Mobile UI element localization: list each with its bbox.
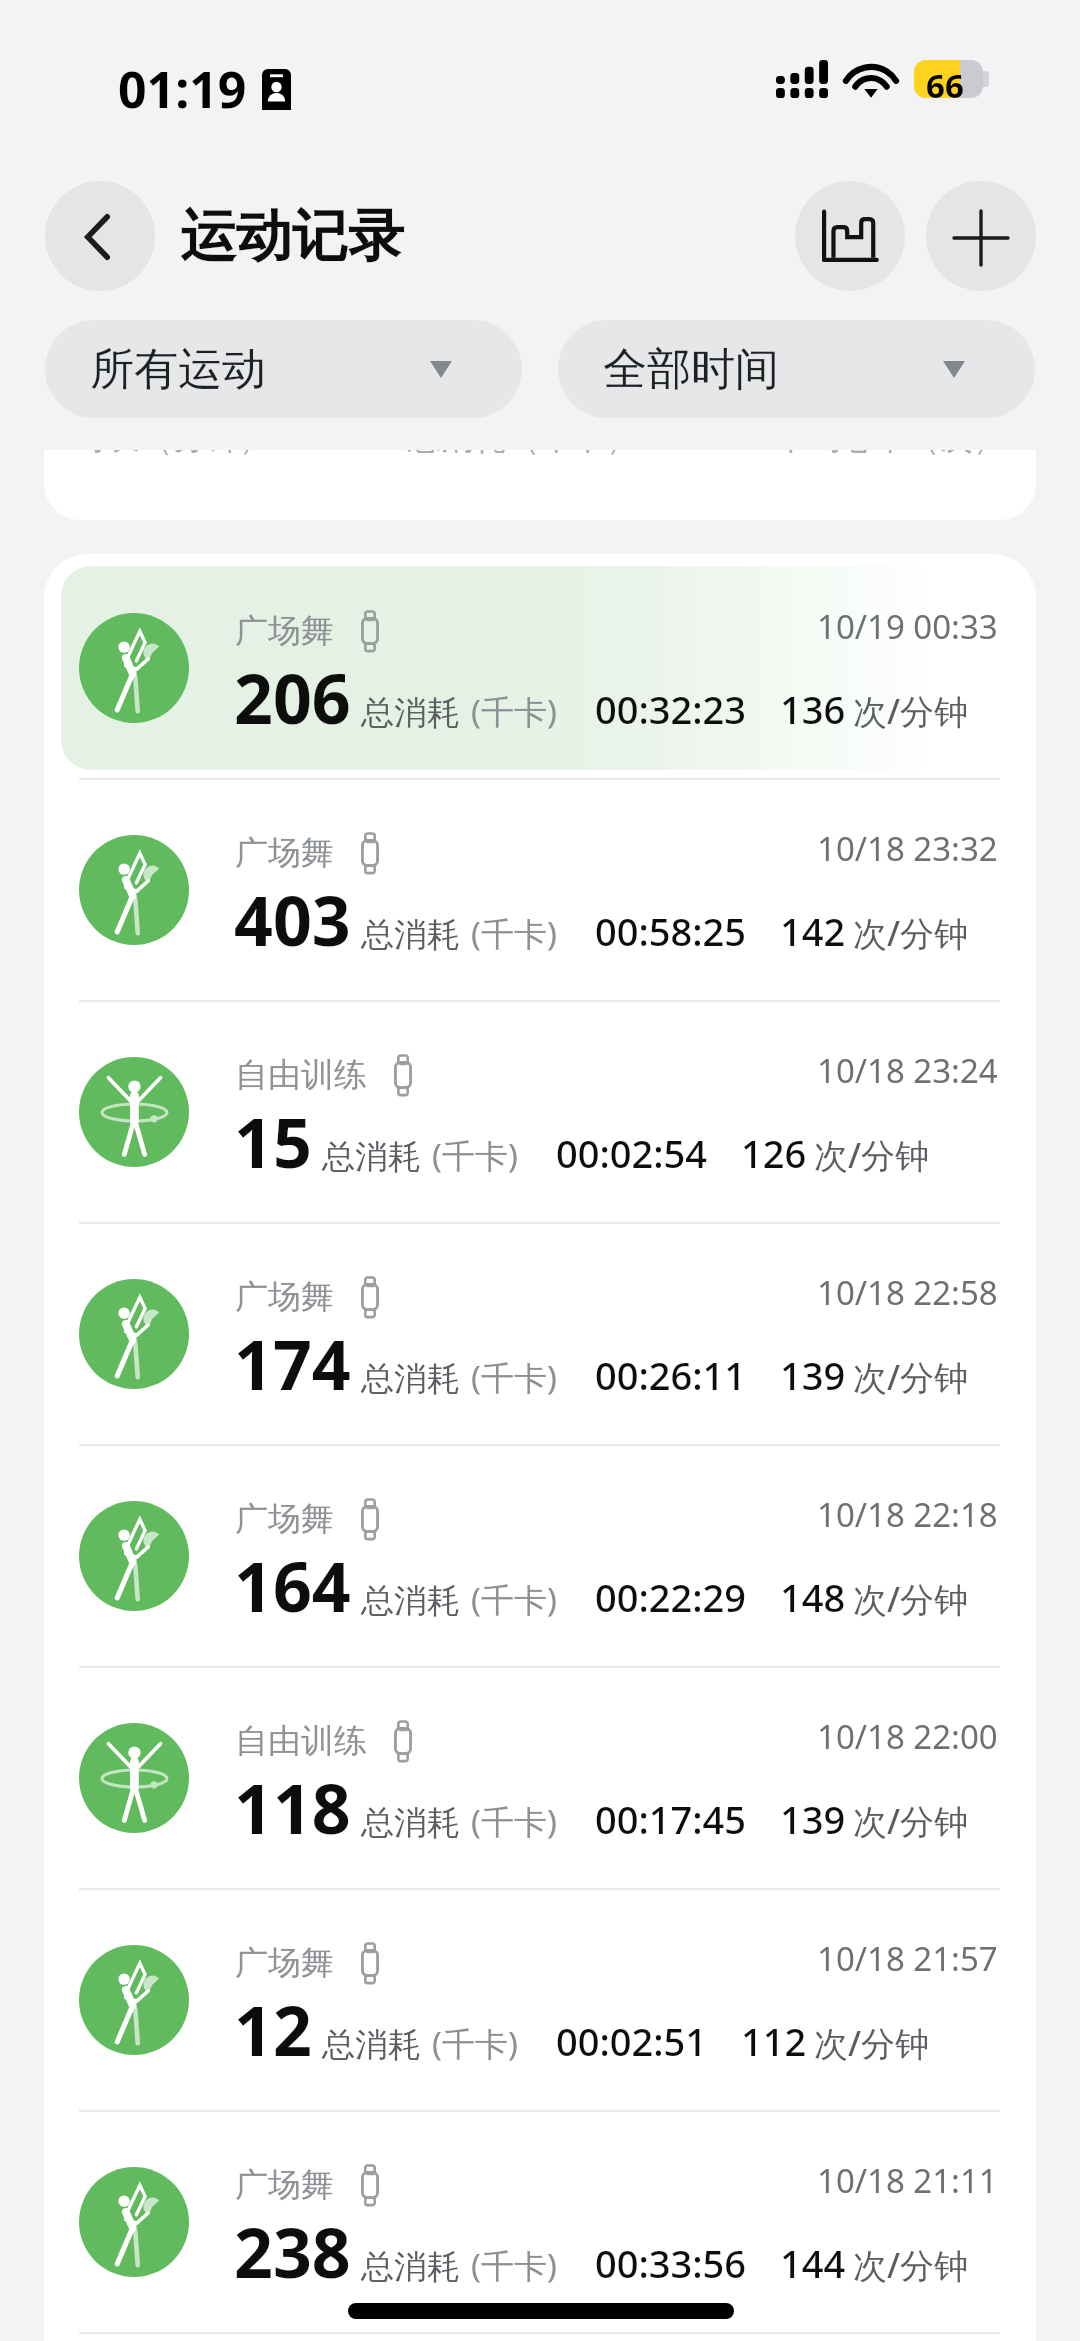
button[interactable]: 广场舞 [44,2110,1036,2332]
staticText: 平均心率（次） [775,450,1006,459]
staticText: 次/分钟 [853,2242,969,2288]
staticText: 112 [741,2015,807,2067]
button[interactable]: 广场舞 [44,1888,1036,2110]
staticText: 00:22:29 [595,1571,747,1623]
staticText: 广场舞 [235,1276,334,1318]
staticText: 运动记录 [180,201,404,272]
button[interactable]: Add record [926,181,1036,291]
staticText: 10/18 22:58 [817,1270,998,1315]
staticText: 总消耗 [361,1802,460,1844]
staticText: 12 [234,1983,312,2076]
staticText: 所有运动 [90,342,266,397]
staticText: 66 [926,63,964,101]
staticText: 238 [234,2205,351,2298]
staticText: 10/18 22:18 [817,1492,998,1537]
button[interactable]: 所有运动 [45,320,522,418]
staticText: 00:17:45 [595,1793,747,1845]
staticText: 206 [234,651,351,744]
staticText: 10/18 21:57 [817,1936,998,1981]
staticText: 139 [780,1349,846,1401]
staticText: 142 [780,905,846,957]
staticText: 174 [234,1317,351,1410]
staticText: (千卡) [432,2021,518,2066]
button[interactable]: 广场舞 [44,554,1036,778]
staticText: 总消耗 [361,2246,460,2288]
staticText: 15 [234,1095,312,1188]
staticText: 139 [780,1793,846,1845]
staticText: (千卡) [432,1133,518,1178]
staticText: 10/19 00:33 [817,604,998,649]
staticText: 自由训练 [235,1054,367,1096]
button[interactable]: 广场舞 [44,778,1036,1000]
staticText: 00:02:51 [556,2015,708,2067]
staticText: 全部时间 [603,342,779,397]
staticText: 总消耗 [361,692,460,734]
staticText: 总消耗 [322,2024,421,2066]
staticText: 次/分钟 [853,910,969,956]
staticText: 次/分钟 [814,1132,930,1178]
staticText: 自由训练 [235,1720,367,1762]
staticText: (千卡) [471,1355,557,1400]
staticText: 广场舞 [235,1498,334,1540]
staticText: 148 [780,1571,846,1623]
staticText: 广场舞 [235,832,334,874]
staticText: (千卡) [471,2243,557,2288]
staticText: 136 [780,683,846,735]
staticText: (千卡) [471,1799,557,1844]
staticText: 广场舞 [235,2164,334,2206]
staticText: 01:19 [118,55,247,123]
staticText: (千卡) [471,1577,557,1622]
staticText: 次/分钟 [853,1354,969,1400]
staticText: 126 [741,1127,807,1179]
staticText: 次/分钟 [853,1798,969,1844]
staticText: 00:58:25 [595,905,747,957]
button[interactable]: 自由训练 [44,1000,1036,1222]
staticText: 时长（分钟） [74,450,272,459]
staticText: 118 [234,1761,351,1854]
staticText: 144 [780,2237,846,2289]
staticText: 次/分钟 [853,688,969,734]
staticText: 403 [234,873,351,966]
staticText: 总消耗 [361,914,460,956]
staticText: 10/18 23:24 [817,1048,998,1093]
staticText: 00:32:23 [595,683,747,735]
staticText: 10/18 21:11 [817,2158,998,2203]
button[interactable]: Statistics [795,181,905,291]
staticText: 次/分钟 [814,2020,930,2066]
button[interactable]: 全部时间 [558,320,1035,418]
staticText: 广场舞 [235,1942,334,1984]
button[interactable]: 广场舞 [44,2332,1036,2341]
button[interactable]: 广场舞 [44,1444,1036,1666]
staticText: 164 [234,1539,351,1632]
staticText: 广场舞 [235,610,334,652]
staticText: 总消耗 [361,1580,460,1622]
staticText: 总消耗（千卡） [408,450,639,459]
staticText: 00:02:54 [556,1127,708,1179]
button[interactable]: 自由训练 [44,1666,1036,1888]
staticText: 10/18 22:00 [817,1714,998,1759]
staticText: 00:26:11 [595,1349,747,1401]
button[interactable]: Back [45,181,155,291]
staticText: 总消耗 [322,1136,421,1178]
staticText: (千卡) [471,689,557,734]
staticText: (千卡) [471,911,557,956]
button[interactable]: 广场舞 [44,1222,1036,1444]
staticText: 00:33:56 [595,2237,747,2289]
staticText: 10/18 23:32 [817,826,998,871]
staticText: 次/分钟 [853,1576,969,1622]
staticText: 总消耗 [361,1358,460,1400]
